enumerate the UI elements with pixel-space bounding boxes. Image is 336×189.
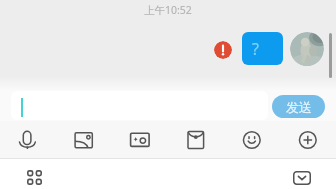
button[interactable]: Resend failed message	[214, 41, 232, 59]
button[interactable]: Photo	[56, 121, 112, 158]
button[interactable]: ?	[242, 32, 283, 65]
button[interactable]: Message input	[11, 91, 268, 120]
button[interactable]: Apps	[22, 165, 47, 189]
button[interactable]: Camera	[112, 121, 168, 158]
button[interactable]: Voice message	[0, 121, 56, 158]
staticText: 上午10:52	[144, 3, 192, 17]
button[interactable]: More	[280, 121, 336, 158]
button[interactable]: Contact avatar	[290, 32, 324, 66]
staticText: ?	[252, 38, 259, 60]
button[interactable]: Sticker	[224, 121, 280, 158]
button[interactable]: Red packet	[168, 121, 224, 158]
button[interactable]: Hide keyboard	[289, 165, 314, 189]
button[interactable]: 发送	[272, 95, 325, 118]
staticText: 发送	[286, 99, 312, 115]
